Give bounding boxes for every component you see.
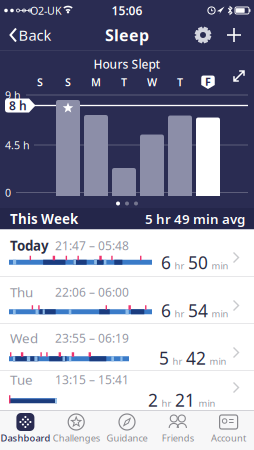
staticText: S: [65, 75, 71, 89]
button[interactable]: Wed: [0, 323, 254, 370]
staticText: Account: [211, 432, 246, 444]
staticText: 42: [186, 346, 206, 369]
staticText: 13:15 – 15:41: [55, 371, 129, 387]
staticText: Dashboard: [0, 432, 50, 444]
staticText: 6: [161, 251, 171, 274]
staticText: Back: [18, 25, 51, 45]
staticText: Thu: [10, 283, 33, 301]
button[interactable]: Friends: [152, 410, 203, 450]
staticText: 4.5 h: [5, 138, 30, 152]
staticText: min: [209, 355, 226, 367]
staticText: hr: [161, 397, 171, 409]
staticText: Guidance: [106, 432, 147, 444]
button[interactable]: Thu: [0, 276, 254, 323]
staticText: 2: [148, 388, 158, 411]
staticText: min: [211, 259, 228, 272]
button[interactable]: Add: [219, 20, 249, 50]
button[interactable]: Today: [0, 229, 254, 276]
staticText: M: [91, 75, 101, 89]
staticText: W: [147, 75, 157, 89]
staticText: O2-UK: [30, 3, 62, 18]
button[interactable]: Back: [6, 20, 58, 50]
button[interactable]: Expand chart: [229, 66, 249, 86]
button[interactable]: Dashboard: [0, 410, 51, 450]
staticText: hr: [174, 259, 184, 272]
button[interactable]: Settings: [188, 20, 218, 50]
staticText: S: [37, 75, 43, 89]
staticText: 15:06: [111, 2, 142, 18]
staticText: Today: [10, 237, 49, 254]
staticText: min: [198, 397, 215, 409]
button[interactable]: Account: [203, 410, 254, 450]
staticText: T: [177, 75, 183, 89]
staticText: 0: [5, 185, 11, 200]
staticText: 54: [188, 299, 208, 322]
staticText: 5: [159, 346, 169, 369]
staticText: 5 hr 49 min avg: [145, 210, 245, 228]
staticText: 21:47 – 05:48: [55, 237, 129, 253]
staticText: Hours Slept: [93, 56, 160, 72]
button[interactable]: Guidance: [102, 410, 152, 450]
staticText: Tue: [10, 371, 33, 388]
staticText: F: [205, 74, 211, 89]
staticText: Wed: [10, 329, 38, 347]
staticText: min: [211, 307, 228, 320]
staticText: Challenges: [53, 432, 100, 444]
staticText: hr: [172, 355, 182, 367]
staticText: Friends: [162, 432, 194, 444]
button[interactable]: Tue: [0, 370, 254, 410]
staticText: 21: [175, 388, 195, 411]
staticText: 23:55 – 06:19: [55, 330, 129, 346]
staticText: Sleep: [105, 24, 149, 46]
staticText: 50: [188, 251, 208, 274]
staticText: hr: [174, 307, 184, 320]
staticText: 9 h: [5, 88, 21, 102]
staticText: T: [121, 75, 127, 89]
staticText: 8 h: [9, 97, 27, 113]
button[interactable]: Challenges: [51, 410, 102, 450]
staticText: 6: [161, 299, 171, 322]
staticText: This Week: [10, 210, 78, 228]
staticText: 22:06 – 06:00: [55, 284, 129, 300]
